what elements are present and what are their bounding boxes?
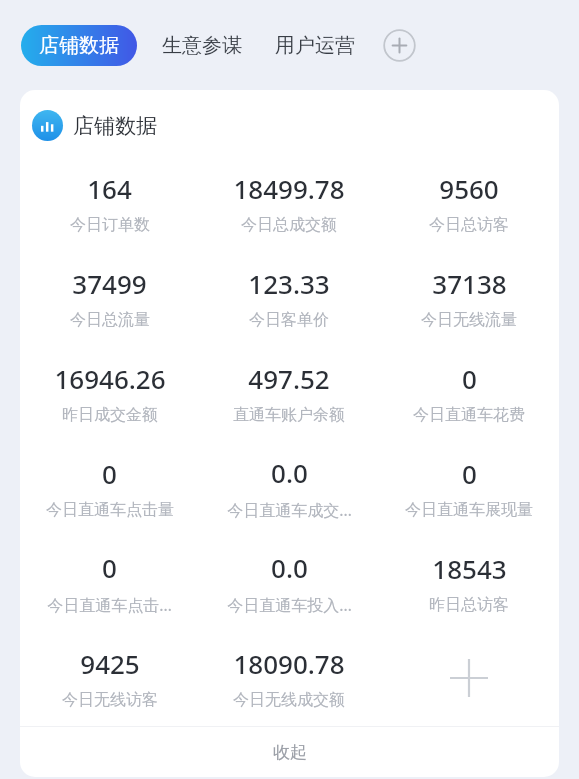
staticText: 18090.78 (233, 646, 345, 681)
staticText: 今日直通车投入… (227, 594, 352, 616)
staticText: 今日总流量 (70, 310, 150, 330)
staticText: 18543 (432, 551, 507, 586)
button[interactable]: 164 (20, 155, 199, 250)
staticText: 497.52 (248, 361, 330, 396)
staticText: 店铺数据 (39, 33, 119, 58)
staticText: 16946.26 (54, 361, 166, 396)
button[interactable]: 0 (379, 345, 559, 440)
staticText: 店铺数据 (73, 113, 157, 139)
staticText: 164 (87, 171, 132, 206)
staticText: 今日直通车成交… (227, 499, 352, 521)
other: Add metric (379, 630, 559, 725)
staticText: 0.0 (271, 550, 308, 585)
staticText: 今日无线流量 (421, 310, 517, 330)
staticText: 今日总成交额 (241, 215, 337, 235)
button[interactable]: 18543 (379, 535, 559, 630)
button[interactable]: 18499.78 (199, 155, 379, 250)
staticText: 123.33 (248, 266, 330, 301)
button[interactable]: 0.0 (199, 440, 379, 535)
button[interactable]: 37499 (20, 250, 199, 345)
staticText: 今日直通车点击… (47, 594, 172, 616)
button[interactable]: 店铺数据 (21, 25, 137, 66)
staticText: 0 (102, 550, 117, 585)
button[interactable]: 497.52 (199, 345, 379, 440)
staticText: 生意参谋 (162, 33, 242, 58)
staticText: 今日直通车点击量 (46, 500, 174, 520)
button[interactable]: Add metric (379, 630, 559, 725)
button[interactable]: 37138 (379, 250, 559, 345)
staticText: 今日总访客 (429, 215, 509, 235)
button[interactable]: 18090.78 (199, 630, 379, 725)
button[interactable]: Add tab (378, 24, 420, 66)
staticText: 今日订单数 (70, 215, 150, 235)
staticText: 昨日总访客 (429, 595, 509, 615)
button[interactable]: 123.33 (199, 250, 379, 345)
button[interactable]: 0 (379, 440, 559, 535)
staticText: 收起 (273, 742, 307, 763)
staticText: 9560 (439, 171, 499, 206)
staticText: 0 (462, 361, 477, 396)
button[interactable]: 9425 (20, 630, 199, 725)
staticText: 今日无线访客 (62, 690, 158, 710)
button[interactable]: 9560 (379, 155, 559, 250)
staticText: 用户运营 (275, 33, 355, 58)
button[interactable]: 0.0 (199, 535, 379, 630)
staticText: 0 (462, 456, 477, 491)
button[interactable]: 16946.26 (20, 345, 199, 440)
button[interactable]: 0 (20, 440, 199, 535)
button[interactable]: 用户运营 (267, 25, 363, 66)
staticText: 9425 (80, 646, 140, 681)
button[interactable]: 0 (20, 535, 199, 630)
staticText: 37499 (72, 266, 147, 301)
staticText: 今日客单价 (249, 310, 329, 330)
staticText: 0.0 (271, 455, 308, 490)
staticText: 直通车账户余额 (233, 405, 345, 425)
staticText: 0 (102, 456, 117, 491)
staticText: 37138 (432, 266, 507, 301)
button[interactable]: 收起 (20, 727, 559, 777)
staticText: 18499.78 (233, 171, 345, 206)
staticText: 今日直通车花费 (413, 405, 525, 425)
staticText: 昨日成交金额 (62, 405, 158, 425)
staticText: 今日无线成交额 (233, 690, 345, 710)
staticText: 今日直通车展现量 (405, 500, 533, 520)
button[interactable]: 生意参谋 (154, 25, 250, 66)
